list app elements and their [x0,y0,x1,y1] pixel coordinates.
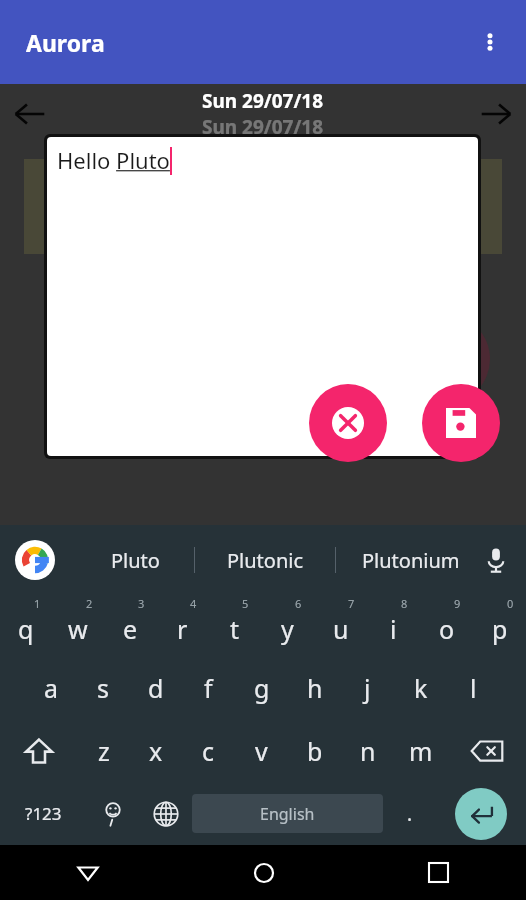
staticText: t [230,612,240,646]
button[interactable]: Change language [139,782,192,845]
button[interactable]: t [208,595,261,657]
staticText: x [149,734,163,768]
button[interactable]: a [25,657,77,719]
staticText: 0 [507,596,514,611]
staticText: p [492,612,508,646]
button[interactable]: e [104,595,156,657]
staticText: k [414,671,428,705]
button[interactable]: r [156,595,208,657]
staticText: Pluto [111,547,160,574]
button[interactable]: Hello Pluto [47,137,478,456]
staticText: r [177,612,188,646]
button[interactable]: Next day [472,90,520,138]
button[interactable]: Pluto [76,525,194,595]
staticText: 6 [295,596,302,611]
button[interactable]: Cancel [309,384,387,462]
staticText: s [97,671,109,705]
button[interactable]: n [341,719,394,782]
button[interactable]: . [383,782,436,845]
staticText: Plutonic [227,547,304,574]
button[interactable]: Save [422,384,500,462]
staticText: 1 [34,596,41,611]
staticText: w [68,612,88,646]
button[interactable]: k [394,657,447,719]
button[interactable]: q [0,595,52,657]
button[interactable]: o [420,595,473,657]
button[interactable]: Recent apps [351,845,526,900]
staticText: d [148,671,164,705]
staticText: u [333,612,349,646]
button[interactable]: More options [466,18,514,66]
staticText: n [360,734,376,768]
staticText: h [307,671,323,705]
staticText: Sun 29/07/18 [202,88,324,114]
button[interactable]: z [78,719,130,782]
button[interactable]: c [182,719,235,782]
staticText: ?123 [25,802,62,825]
staticText: 2 [86,596,93,611]
staticText: a [44,671,59,705]
staticText: 3 [138,596,145,611]
staticText: z [98,734,110,768]
button[interactable]: Enter [455,788,507,840]
staticText: q [18,612,34,646]
staticText: o [439,612,455,646]
staticText: English [260,803,315,825]
staticText: 5 [242,596,249,611]
button[interactable]: ?123 [0,782,86,845]
staticText: Aurora [26,27,105,58]
staticText: i [390,612,397,646]
button[interactable]: b [288,719,341,782]
button[interactable]: s [77,657,129,719]
staticText: l [470,671,477,705]
button[interactable]: Google [12,537,58,583]
button[interactable]: y [261,595,314,657]
button[interactable]: l [447,657,500,719]
button[interactable]: u [314,595,367,657]
button[interactable]: Voice input [474,538,518,582]
button[interactable]: x [130,719,182,782]
button[interactable]: i [367,595,420,657]
staticText: j [364,671,371,705]
button[interactable]: p [473,595,526,657]
staticText: 9 [454,596,461,611]
button[interactable]: Shift [0,719,78,782]
button[interactable]: w [52,595,104,657]
staticText: 8 [401,596,408,611]
button[interactable]: v [235,719,288,782]
button[interactable]: h [288,657,341,719]
staticText: c [202,734,215,768]
staticText: Plutonium [362,547,460,574]
button[interactable]: d [129,657,182,719]
button[interactable]: Emoji and comma [86,782,139,845]
button[interactable]: Home [176,845,351,900]
button[interactable]: g [235,657,288,719]
staticText: 7 [348,596,355,611]
button[interactable]: f [182,657,235,719]
button[interactable]: Backspace [447,719,526,782]
button[interactable]: English [192,794,383,833]
staticText: m [409,734,433,768]
button[interactable]: Plutonium [336,525,486,595]
staticText: Hello Pluto [57,145,170,175]
staticText: g [254,671,270,705]
button[interactable]: Back [0,845,176,900]
button[interactable]: Previous day [6,90,54,138]
staticText: f [204,671,213,705]
staticText: y [281,612,294,646]
staticText: v [255,734,268,768]
button[interactable]: Plutonic [195,525,335,595]
button[interactable]: m [394,719,447,782]
staticText: b [307,734,323,768]
staticText: e [123,612,138,646]
staticText: Sun 29/07/18 [202,114,324,140]
staticText: . [407,801,413,827]
button[interactable]: j [341,657,394,719]
staticText: 4 [190,596,197,611]
